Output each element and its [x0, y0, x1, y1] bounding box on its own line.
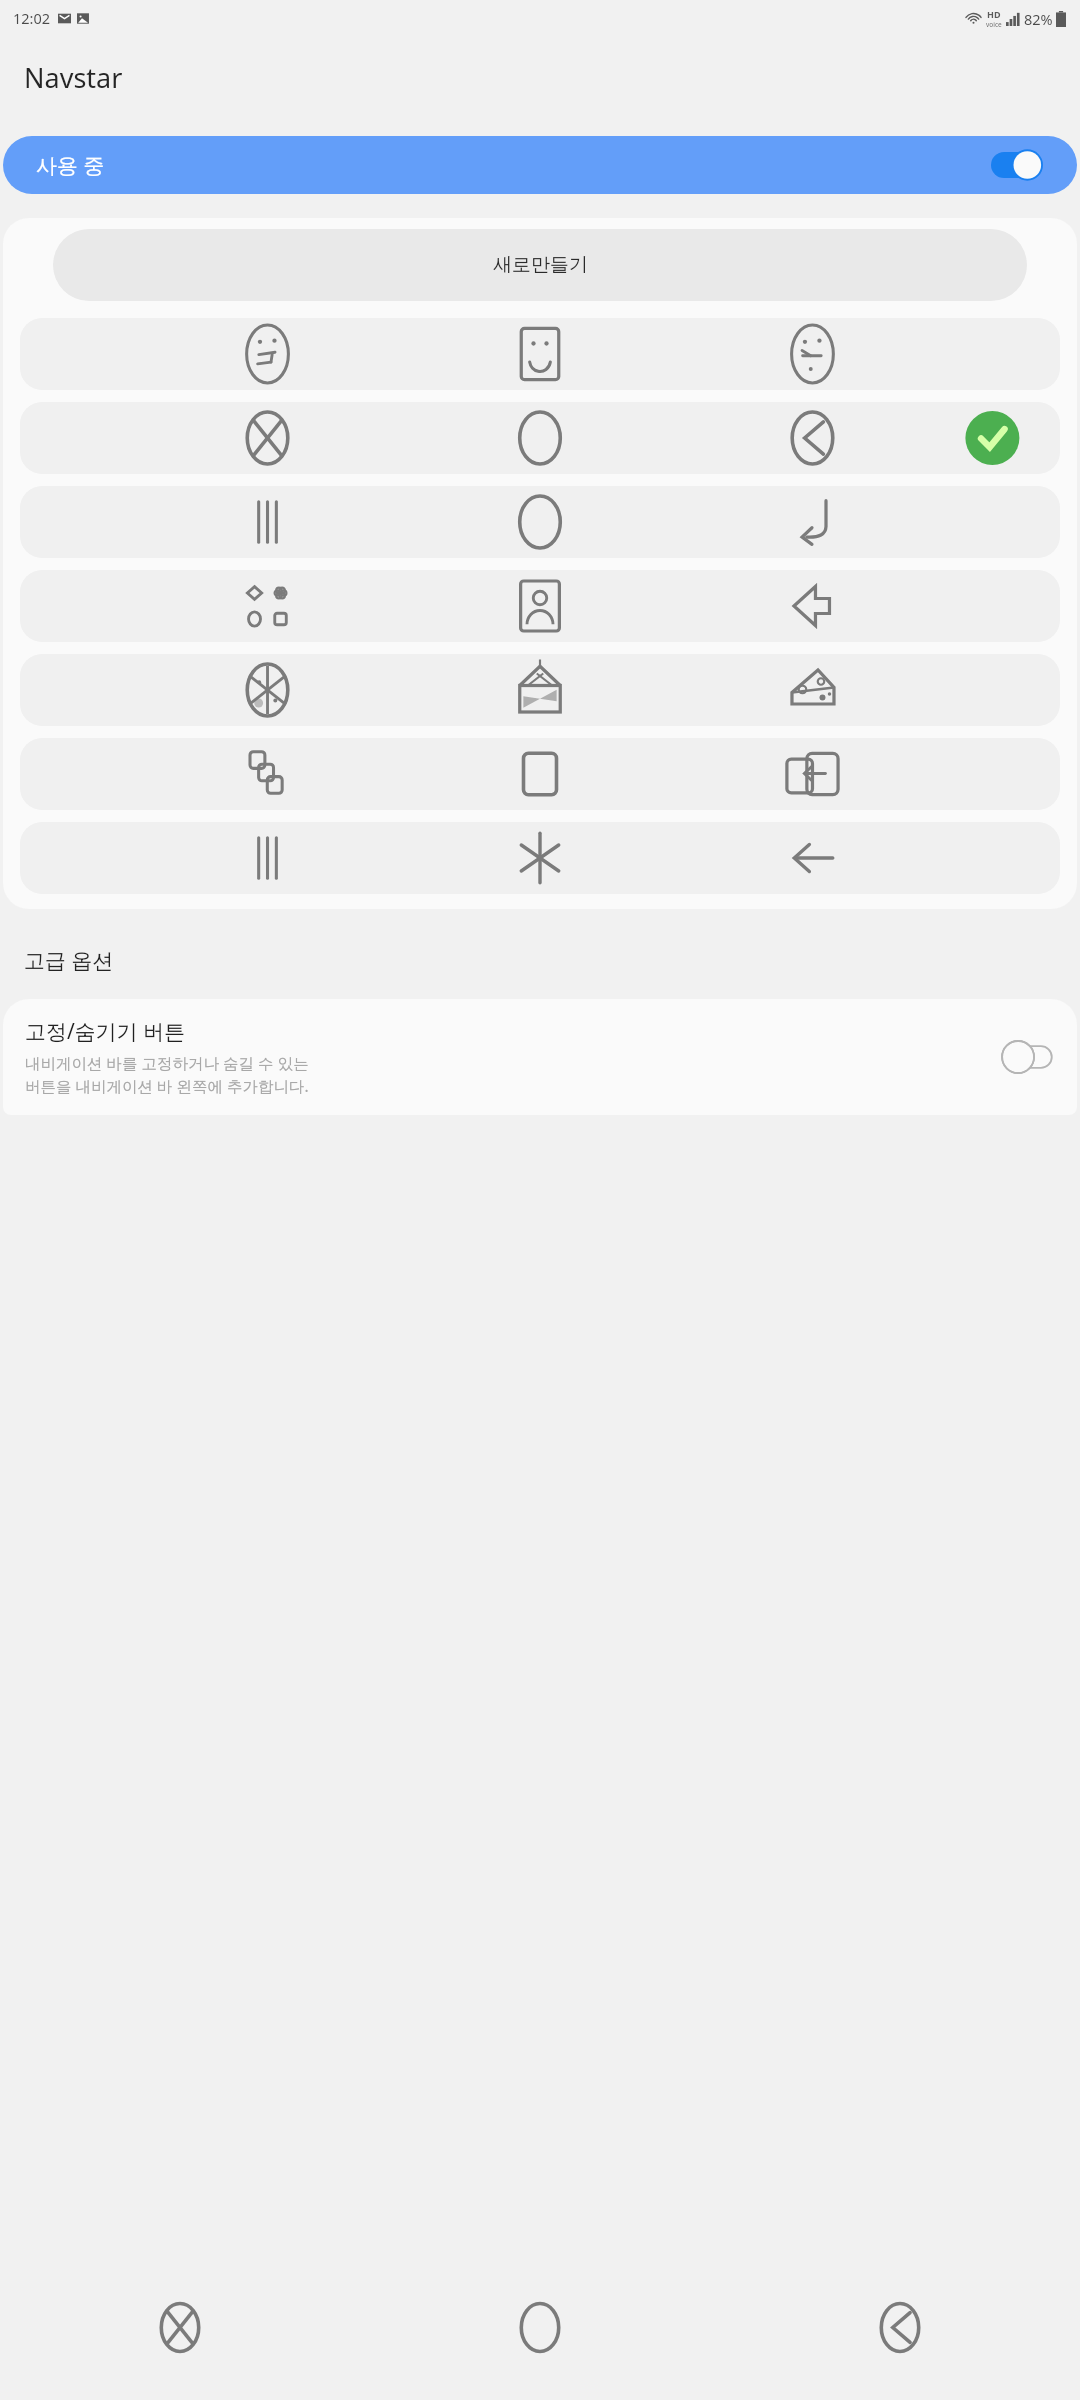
button[interactable]: Pin/hide button toggle — [1001, 1040, 1055, 1074]
button[interactable]: Recents — [0, 2255, 360, 2400]
button[interactable]: Navigation bar layout option — [20, 402, 1060, 474]
staticText: 내비게이션 바를 고정하거나 숨길 수 있는 버튼을 내비게이션 바 왼쪽에 추… — [25, 1052, 309, 1097]
staticText: 사용 중 — [36, 151, 105, 180]
staticText: voice — [986, 20, 1002, 29]
staticText: Navstar — [24, 59, 123, 96]
button[interactable]: Home — [360, 2255, 720, 2400]
button[interactable]: Navigation bar layout option — [20, 570, 1060, 642]
staticText: 82% — [1024, 9, 1053, 29]
staticText: 새로만들기 — [493, 253, 588, 277]
button[interactable]: 사용 중 — [3, 136, 1077, 194]
staticText: HD — [987, 8, 1001, 20]
button[interactable]: Navigation bar layout option — [20, 486, 1060, 558]
button[interactable]: Navigation bar layout option — [20, 318, 1060, 390]
staticText: 고급 옵션 — [24, 946, 114, 975]
button[interactable]: 고정/숨기기 버튼 — [3, 999, 1077, 1115]
button[interactable]: 새로만들기 — [53, 229, 1027, 301]
button[interactable]: Back — [720, 2255, 1080, 2400]
button[interactable]: Navigation bar layout option — [20, 738, 1060, 810]
staticText: 고정/숨기기 버튼 — [25, 1017, 186, 1046]
button[interactable]: Navigation bar layout option — [20, 654, 1060, 726]
staticText: 12:02 — [13, 8, 51, 28]
button[interactable]: Navigation bar layout option — [20, 822, 1060, 894]
